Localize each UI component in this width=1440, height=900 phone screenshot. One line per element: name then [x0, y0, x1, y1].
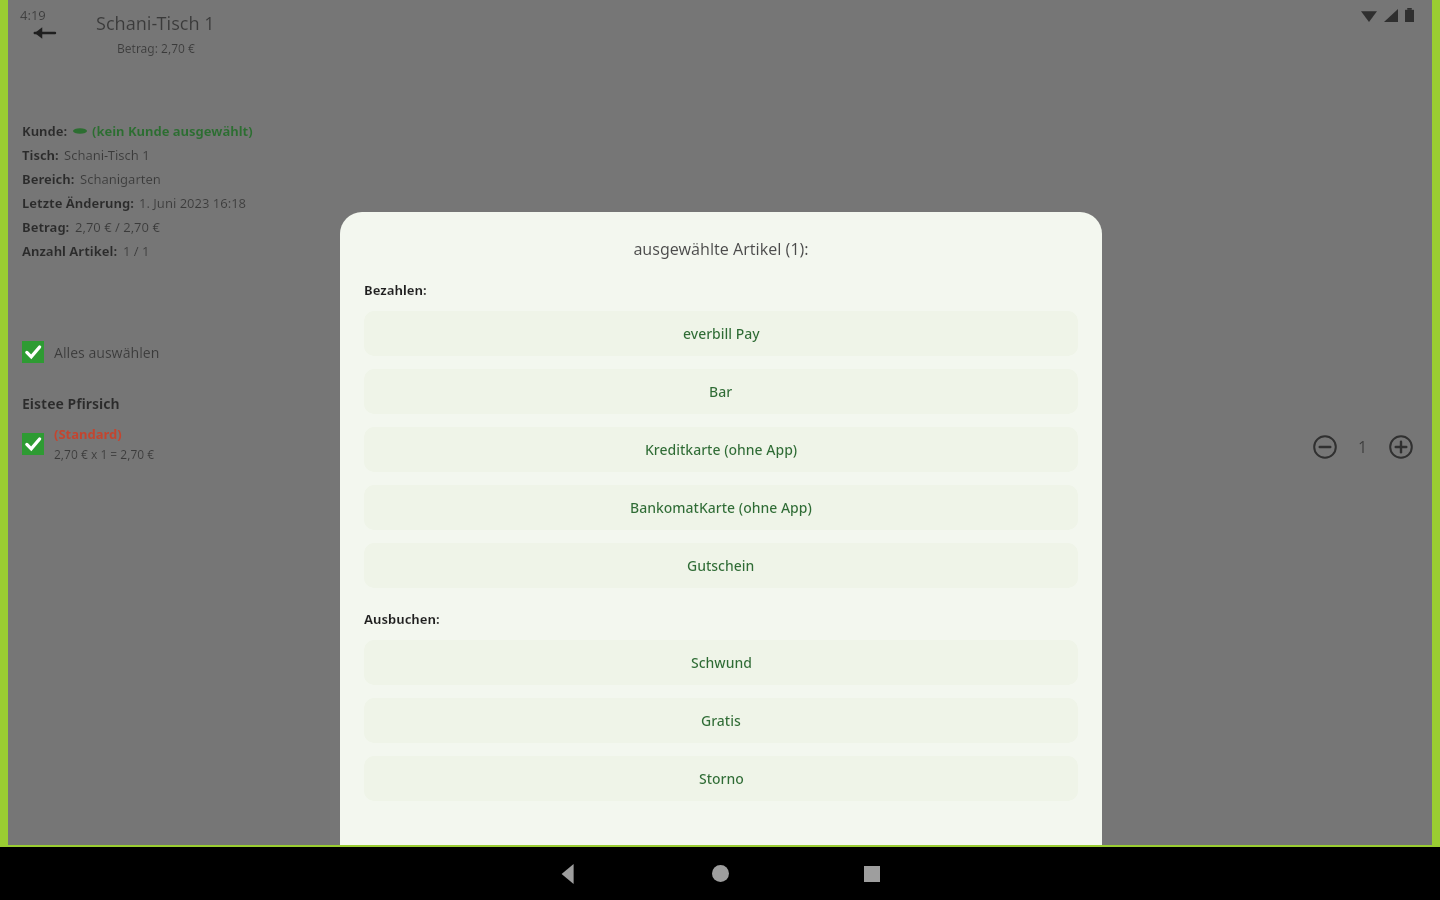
button[interactable] [22, 433, 44, 455]
button[interactable]: Storno [364, 756, 1078, 801]
button[interactable]: Alles auswählen [22, 341, 160, 363]
staticText: Schani-Tisch 1 [96, 11, 215, 36]
staticText: Gutschein [687, 556, 755, 575]
button[interactable]: Home [692, 847, 748, 900]
button[interactable]: everbill Pay [364, 311, 1078, 356]
staticText: Gratis [701, 711, 741, 730]
staticText: Schwund [691, 653, 752, 672]
staticText: (Standard) [54, 425, 122, 443]
staticText: Tisch: [22, 146, 59, 164]
button[interactable]: Gutschein [364, 543, 1078, 588]
staticText: ausgewählte Artikel (1): [340, 238, 1102, 260]
staticText: Ausbuchen: [364, 610, 440, 628]
staticText: Kreditkarte (ohne App) [645, 440, 798, 459]
staticText: Schanigarten [80, 170, 161, 188]
staticText: Bar [709, 382, 733, 401]
button[interactable]: Bar [364, 369, 1078, 414]
button[interactable]: Kreditkarte (ohne App) [364, 427, 1078, 472]
staticText: Kunde: [22, 122, 68, 140]
staticText: Bereich: [22, 170, 75, 188]
staticText: Bezahlen: [364, 281, 427, 299]
button[interactable]: Decrease quantity [1308, 430, 1342, 464]
staticText: Alles auswählen [54, 343, 160, 362]
button[interactable]: Gratis [364, 698, 1078, 743]
staticText: 4:19 [20, 6, 46, 24]
button[interactable]: Increase quantity [1384, 430, 1418, 464]
staticText: Betrag: [22, 218, 70, 236]
button[interactable]: Back [540, 847, 596, 900]
staticText: 2,70 € / 2,70 € [75, 218, 160, 236]
staticText: 1 [1358, 436, 1368, 458]
staticText: Schani-Tisch 1 [64, 146, 150, 164]
button[interactable]: Back [22, 11, 66, 55]
staticText: Betrag: 2,70 € [117, 40, 195, 56]
staticText: Letzte Änderung: [22, 194, 134, 212]
staticText: Anzahl Artikel: [22, 242, 118, 260]
button[interactable]: BankomatKarte (ohne App) [364, 485, 1078, 530]
staticText: 1 / 1 [123, 242, 150, 260]
staticText: BankomatKarte (ohne App) [630, 498, 812, 517]
button[interactable]: Schwund [364, 640, 1078, 685]
staticText: everbill Pay [683, 324, 760, 343]
staticText: Storno [699, 769, 744, 788]
staticText: Eistee Pfirsich [22, 394, 120, 413]
button[interactable]: Recent apps [844, 847, 900, 900]
button[interactable]: (Standard) [22, 425, 155, 462]
button[interactable] [22, 341, 44, 363]
staticText: 1. Juni 2023 16:18 [139, 194, 247, 212]
staticText: 2,70 € x 1 = 2,70 € [54, 446, 155, 462]
staticText: (kein Kunde ausgewählt) [92, 122, 253, 140]
